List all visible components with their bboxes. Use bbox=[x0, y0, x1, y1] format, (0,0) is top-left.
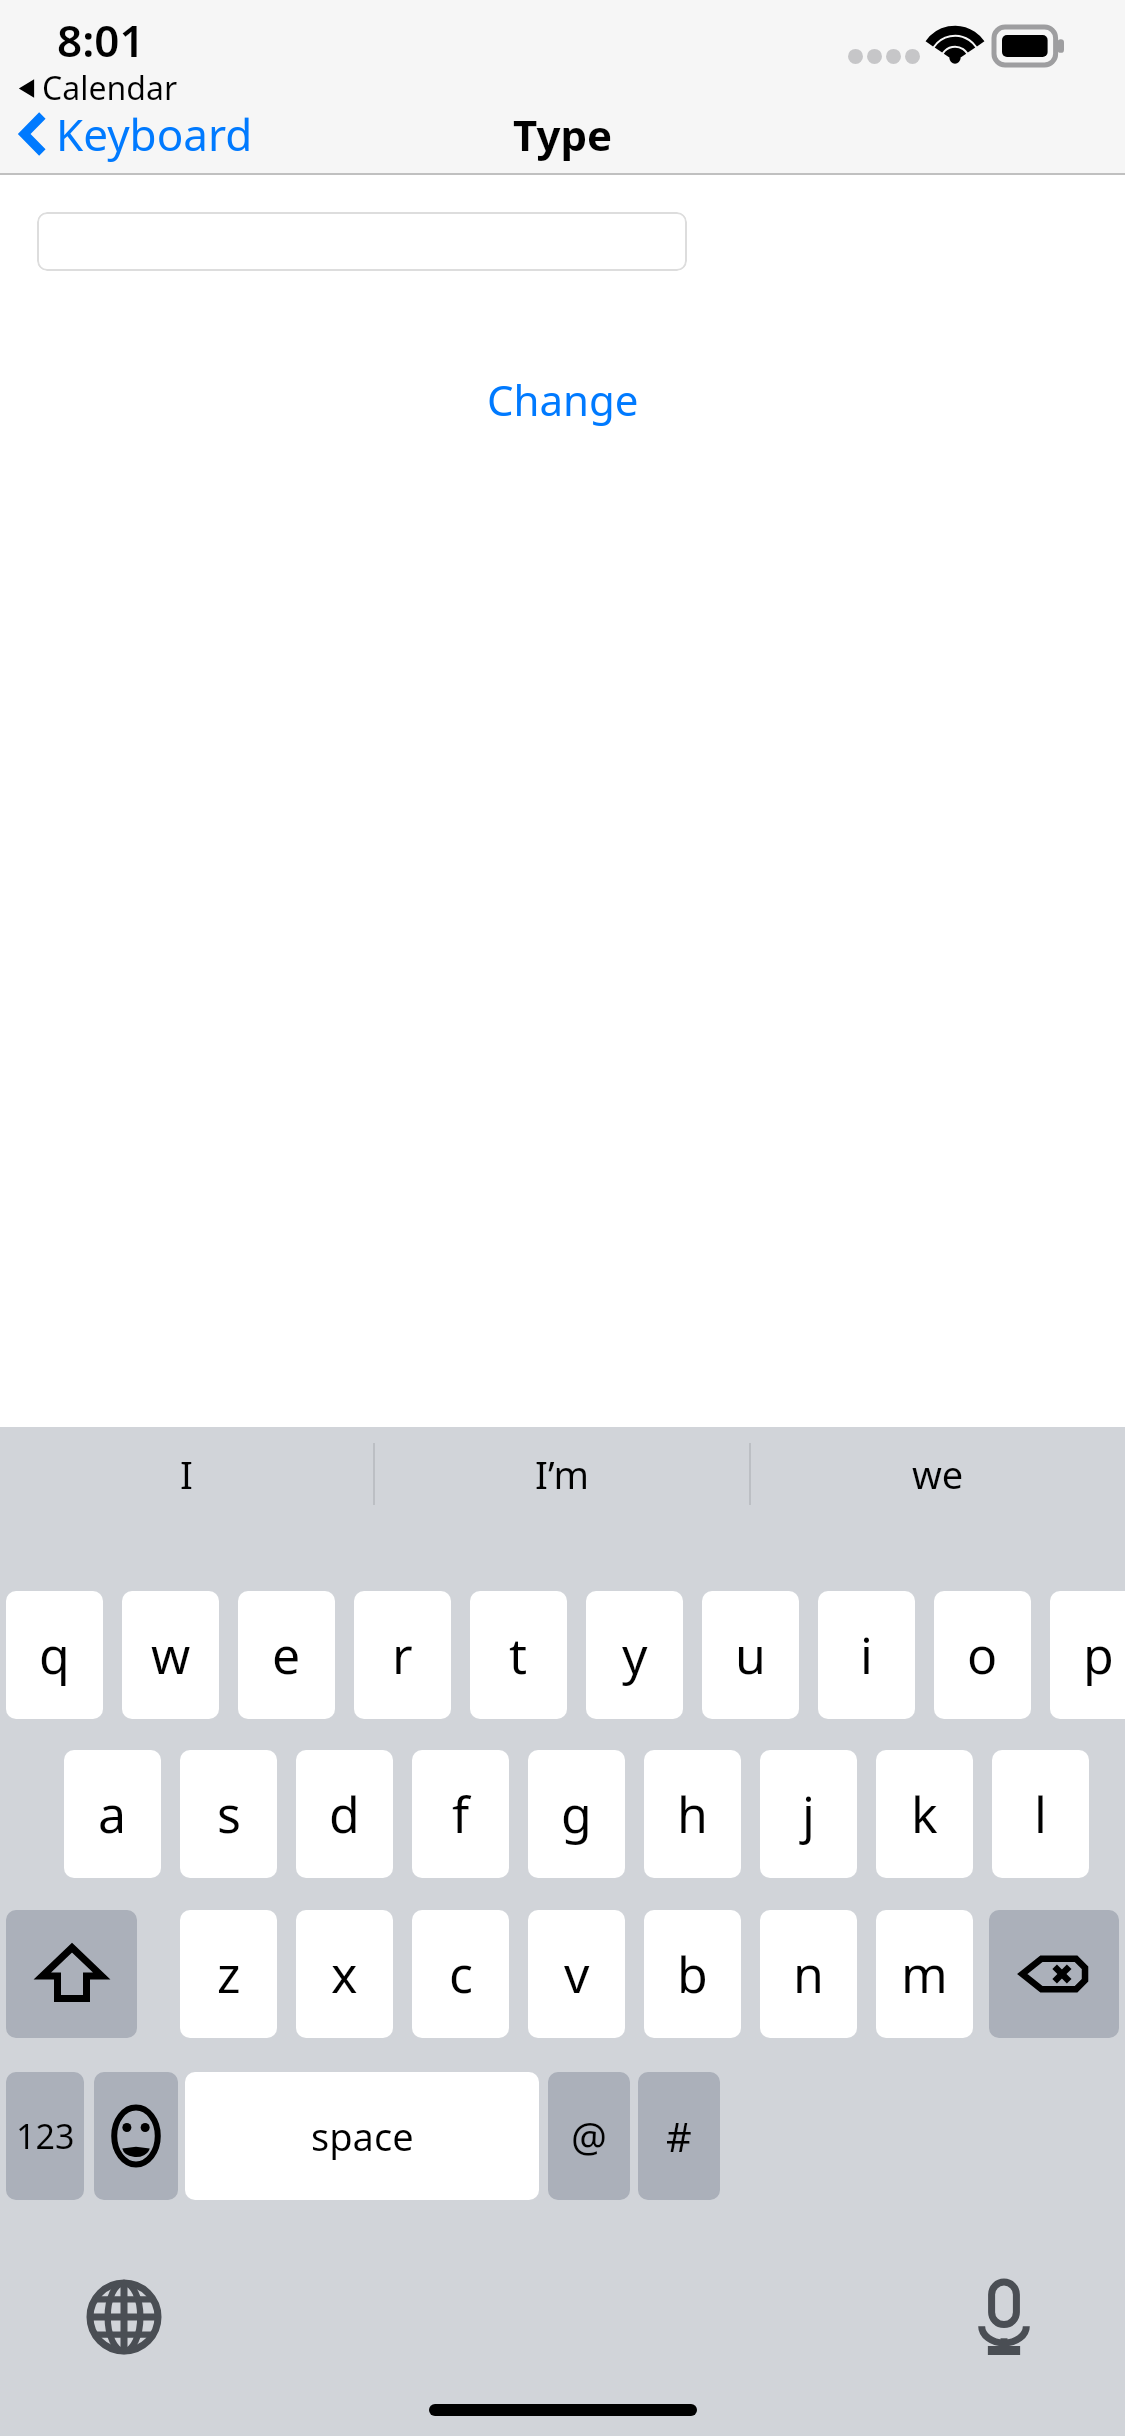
staticText: h bbox=[677, 1780, 708, 1848]
button[interactable]: j bbox=[760, 1750, 857, 1878]
staticText: # bbox=[666, 2109, 692, 2163]
staticText: n bbox=[793, 1940, 824, 2008]
staticText: f bbox=[452, 1780, 470, 1848]
staticText: r bbox=[392, 1621, 413, 1689]
staticText: space bbox=[311, 2110, 414, 2162]
button[interactable]: z bbox=[180, 1910, 277, 2038]
button[interactable]: u bbox=[702, 1591, 799, 1719]
button[interactable]: o bbox=[934, 1591, 1031, 1719]
staticText: Change bbox=[487, 371, 639, 428]
button[interactable]: a bbox=[64, 1750, 161, 1878]
button[interactable]: n bbox=[760, 1910, 857, 2038]
button[interactable]: t bbox=[470, 1591, 567, 1719]
button[interactable]: I’m bbox=[375, 1427, 749, 1520]
button[interactable]: x bbox=[296, 1910, 393, 2038]
button[interactable]: k bbox=[876, 1750, 973, 1878]
button[interactable]: l bbox=[992, 1750, 1089, 1878]
button[interactable]: m bbox=[876, 1910, 973, 2038]
staticText: p bbox=[1083, 1621, 1114, 1689]
staticText: s bbox=[217, 1780, 241, 1848]
staticText: a bbox=[98, 1780, 127, 1848]
staticText: k bbox=[911, 1780, 938, 1848]
staticText: u bbox=[735, 1621, 766, 1689]
staticText: g bbox=[561, 1780, 592, 1848]
button[interactable]: Emoji bbox=[94, 2072, 178, 2200]
button[interactable]: q bbox=[6, 1591, 103, 1719]
button[interactable]: # bbox=[638, 2072, 720, 2200]
staticText: Calendar bbox=[42, 66, 178, 110]
staticText: w bbox=[151, 1621, 191, 1689]
button[interactable]: we bbox=[751, 1427, 1125, 1520]
button[interactable]: Change keyboard language bbox=[85, 2278, 163, 2356]
staticText: o bbox=[967, 1621, 998, 1689]
button[interactable]: 123 bbox=[6, 2072, 84, 2200]
button[interactable]: e bbox=[238, 1591, 335, 1719]
staticText: t bbox=[509, 1621, 528, 1689]
button[interactable]: i bbox=[818, 1591, 915, 1719]
button[interactable]: I bbox=[0, 1427, 373, 1520]
button[interactable]: p bbox=[1050, 1591, 1125, 1719]
button[interactable]: g bbox=[528, 1750, 625, 1878]
button[interactable]: h bbox=[644, 1750, 741, 1878]
button[interactable]: y bbox=[586, 1591, 683, 1719]
button[interactable]: Backspace bbox=[989, 1910, 1119, 2038]
staticText: 123 bbox=[16, 2113, 75, 2159]
staticText: I’m bbox=[535, 1448, 589, 1500]
staticText: d bbox=[329, 1780, 360, 1848]
button[interactable]: v bbox=[528, 1910, 625, 2038]
staticText: Keyboard bbox=[56, 104, 253, 164]
button[interactable]: f bbox=[412, 1750, 509, 1878]
button[interactable]: @ bbox=[548, 2072, 630, 2200]
staticText: I bbox=[180, 1448, 193, 1500]
button[interactable]: Back to Calendar bbox=[18, 66, 178, 110]
button[interactable]: c bbox=[412, 1910, 509, 2038]
button[interactable]: Text field bbox=[37, 212, 687, 271]
staticText: x bbox=[331, 1940, 358, 2008]
button[interactable]: Shift bbox=[6, 1910, 137, 2038]
staticText: j bbox=[802, 1780, 815, 1848]
button[interactable]: d bbox=[296, 1750, 393, 1878]
staticText: v bbox=[564, 1940, 590, 2008]
staticText: 8:01 bbox=[57, 10, 145, 70]
button[interactable]: r bbox=[354, 1591, 451, 1719]
button[interactable]: s bbox=[180, 1750, 277, 1878]
button[interactable]: Dictation bbox=[965, 2278, 1043, 2356]
button[interactable]: Change bbox=[465, 361, 661, 438]
staticText: Type bbox=[0, 106, 1125, 163]
staticText: e bbox=[272, 1621, 301, 1689]
staticText: i bbox=[860, 1621, 873, 1689]
button[interactable]: Keyboard bbox=[14, 98, 259, 170]
staticText: m bbox=[901, 1940, 948, 2008]
staticText: @ bbox=[571, 2109, 607, 2163]
staticText: l bbox=[1034, 1780, 1047, 1848]
staticText: c bbox=[449, 1940, 473, 2008]
button[interactable]: space bbox=[185, 2072, 539, 2200]
staticText: b bbox=[677, 1940, 708, 2008]
staticText: q bbox=[39, 1621, 70, 1689]
button[interactable]: b bbox=[644, 1910, 741, 2038]
staticText: we bbox=[912, 1448, 964, 1500]
staticText: y bbox=[622, 1621, 648, 1689]
button[interactable]: w bbox=[122, 1591, 219, 1719]
staticText: z bbox=[217, 1940, 241, 2008]
